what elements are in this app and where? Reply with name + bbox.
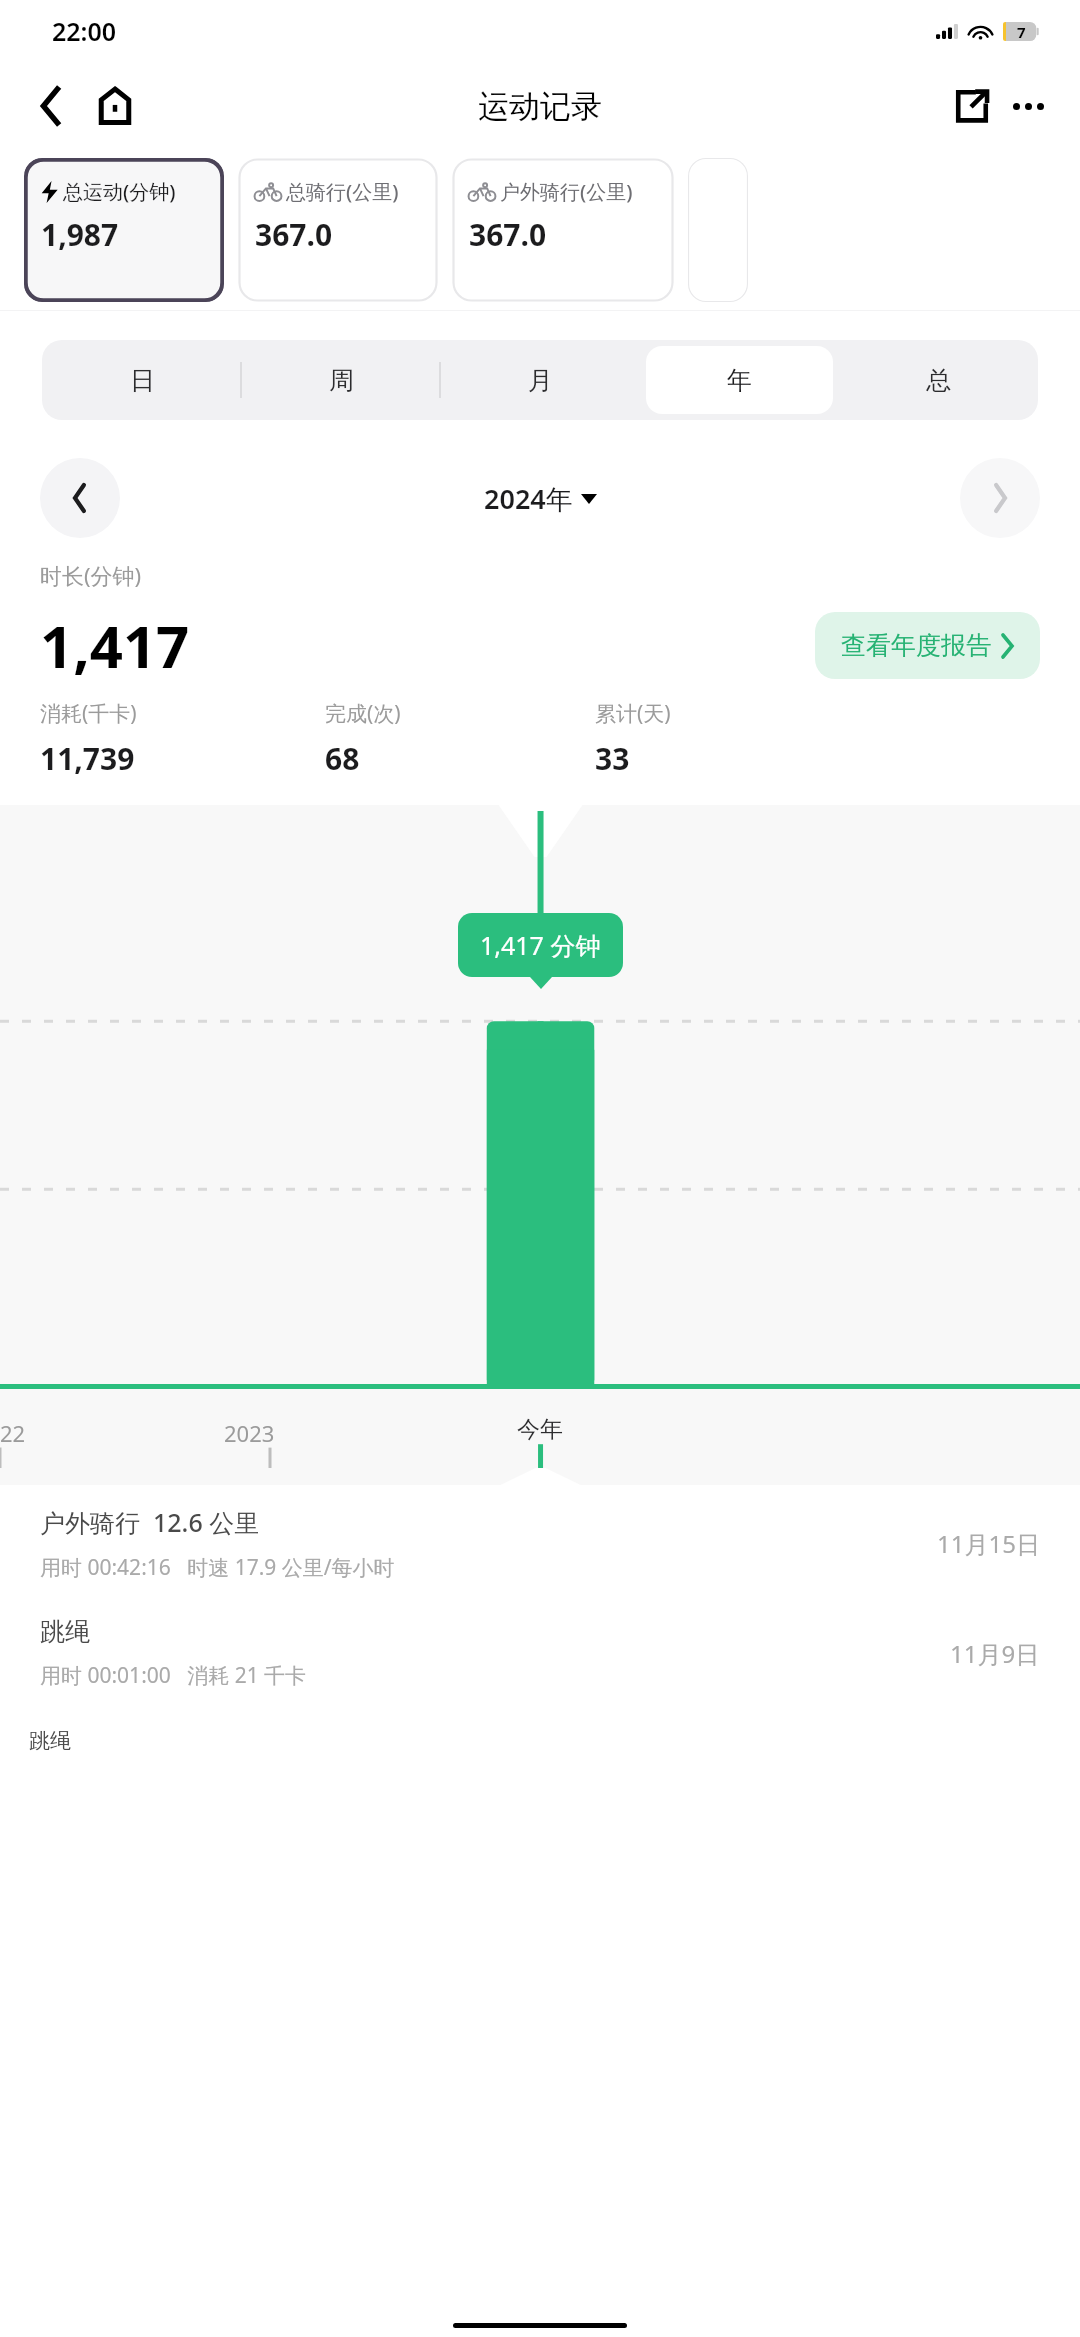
staticText: 周 (329, 365, 354, 396)
staticText: 总 (926, 365, 951, 396)
button[interactable]: Back (26, 81, 76, 131)
button[interactable]: 日 (48, 346, 236, 414)
button[interactable]: Home (90, 81, 140, 131)
staticText: 时长(分钟) (40, 560, 142, 590)
staticText: 1,417 (40, 606, 190, 685)
staticText: 7 (1017, 22, 1026, 41)
staticText: 68 (325, 738, 360, 779)
staticText: 2023 (224, 1418, 275, 1448)
staticText: 11月9日 (950, 1637, 1040, 1670)
button[interactable]: Previous year (40, 458, 120, 538)
staticText: 2024年 (484, 480, 573, 517)
staticText: 运动记录 (478, 87, 602, 126)
button[interactable]: Next year (960, 458, 1040, 538)
staticText: 月 (528, 365, 553, 396)
staticText: 累计(天) (595, 699, 671, 728)
staticText: 日 (130, 365, 155, 396)
staticText: 今年 (517, 1415, 563, 1444)
button[interactable] (688, 158, 748, 302)
staticText: 跳绳 (40, 1616, 90, 1647)
staticText: 完成(次) (325, 699, 401, 728)
staticText: 户外骑行 12.6 公里 (40, 1505, 260, 1539)
staticText: 总运动(分钟) (63, 178, 176, 205)
staticText: 消耗(千卡) (40, 699, 137, 728)
staticText: 11月15日 (937, 1527, 1040, 1560)
button[interactable]: 年 (646, 346, 833, 414)
staticText: 367.0 (255, 214, 333, 255)
staticText: 22 (0, 1418, 26, 1448)
button[interactable]: More options (1002, 80, 1054, 132)
staticText: 367.0 (469, 214, 547, 255)
staticText: 查看年度报告 (841, 630, 991, 661)
button[interactable]: 户外骑行 12.6 公里 (0, 1501, 1080, 1586)
staticText: 1,417 分钟 (480, 928, 601, 962)
staticText: 22:00 (52, 14, 117, 48)
button[interactable]: 查看年度报告 (815, 612, 1040, 679)
staticText: 用时 00:42:16 时速 17.9 公里/每小时 (40, 1553, 395, 1582)
button[interactable]: 周 (248, 346, 435, 414)
staticText: 33 (595, 738, 630, 779)
staticText: 11,739 (40, 738, 135, 779)
button[interactable]: 总骑行(公里) (238, 158, 438, 302)
staticText: 1,987 (41, 214, 119, 255)
button[interactable]: 跳绳 (0, 1612, 1080, 1694)
staticText: 用时 00:01:00 消耗 21 千卡 (40, 1661, 307, 1690)
staticText: 总骑行(公里) (286, 178, 399, 205)
button[interactable]: 2024年 (484, 480, 597, 517)
button[interactable]: Share (946, 80, 998, 132)
button[interactable]: 总运动(分钟) (24, 158, 224, 302)
staticText: 跳绳 (29, 1728, 71, 1754)
button[interactable]: 户外骑行(公里) (452, 158, 674, 302)
button[interactable]: 总 (845, 346, 1032, 414)
staticText: 年 (727, 365, 752, 396)
button[interactable]: 月 (447, 346, 634, 414)
staticText: 户外骑行(公里) (500, 178, 633, 205)
